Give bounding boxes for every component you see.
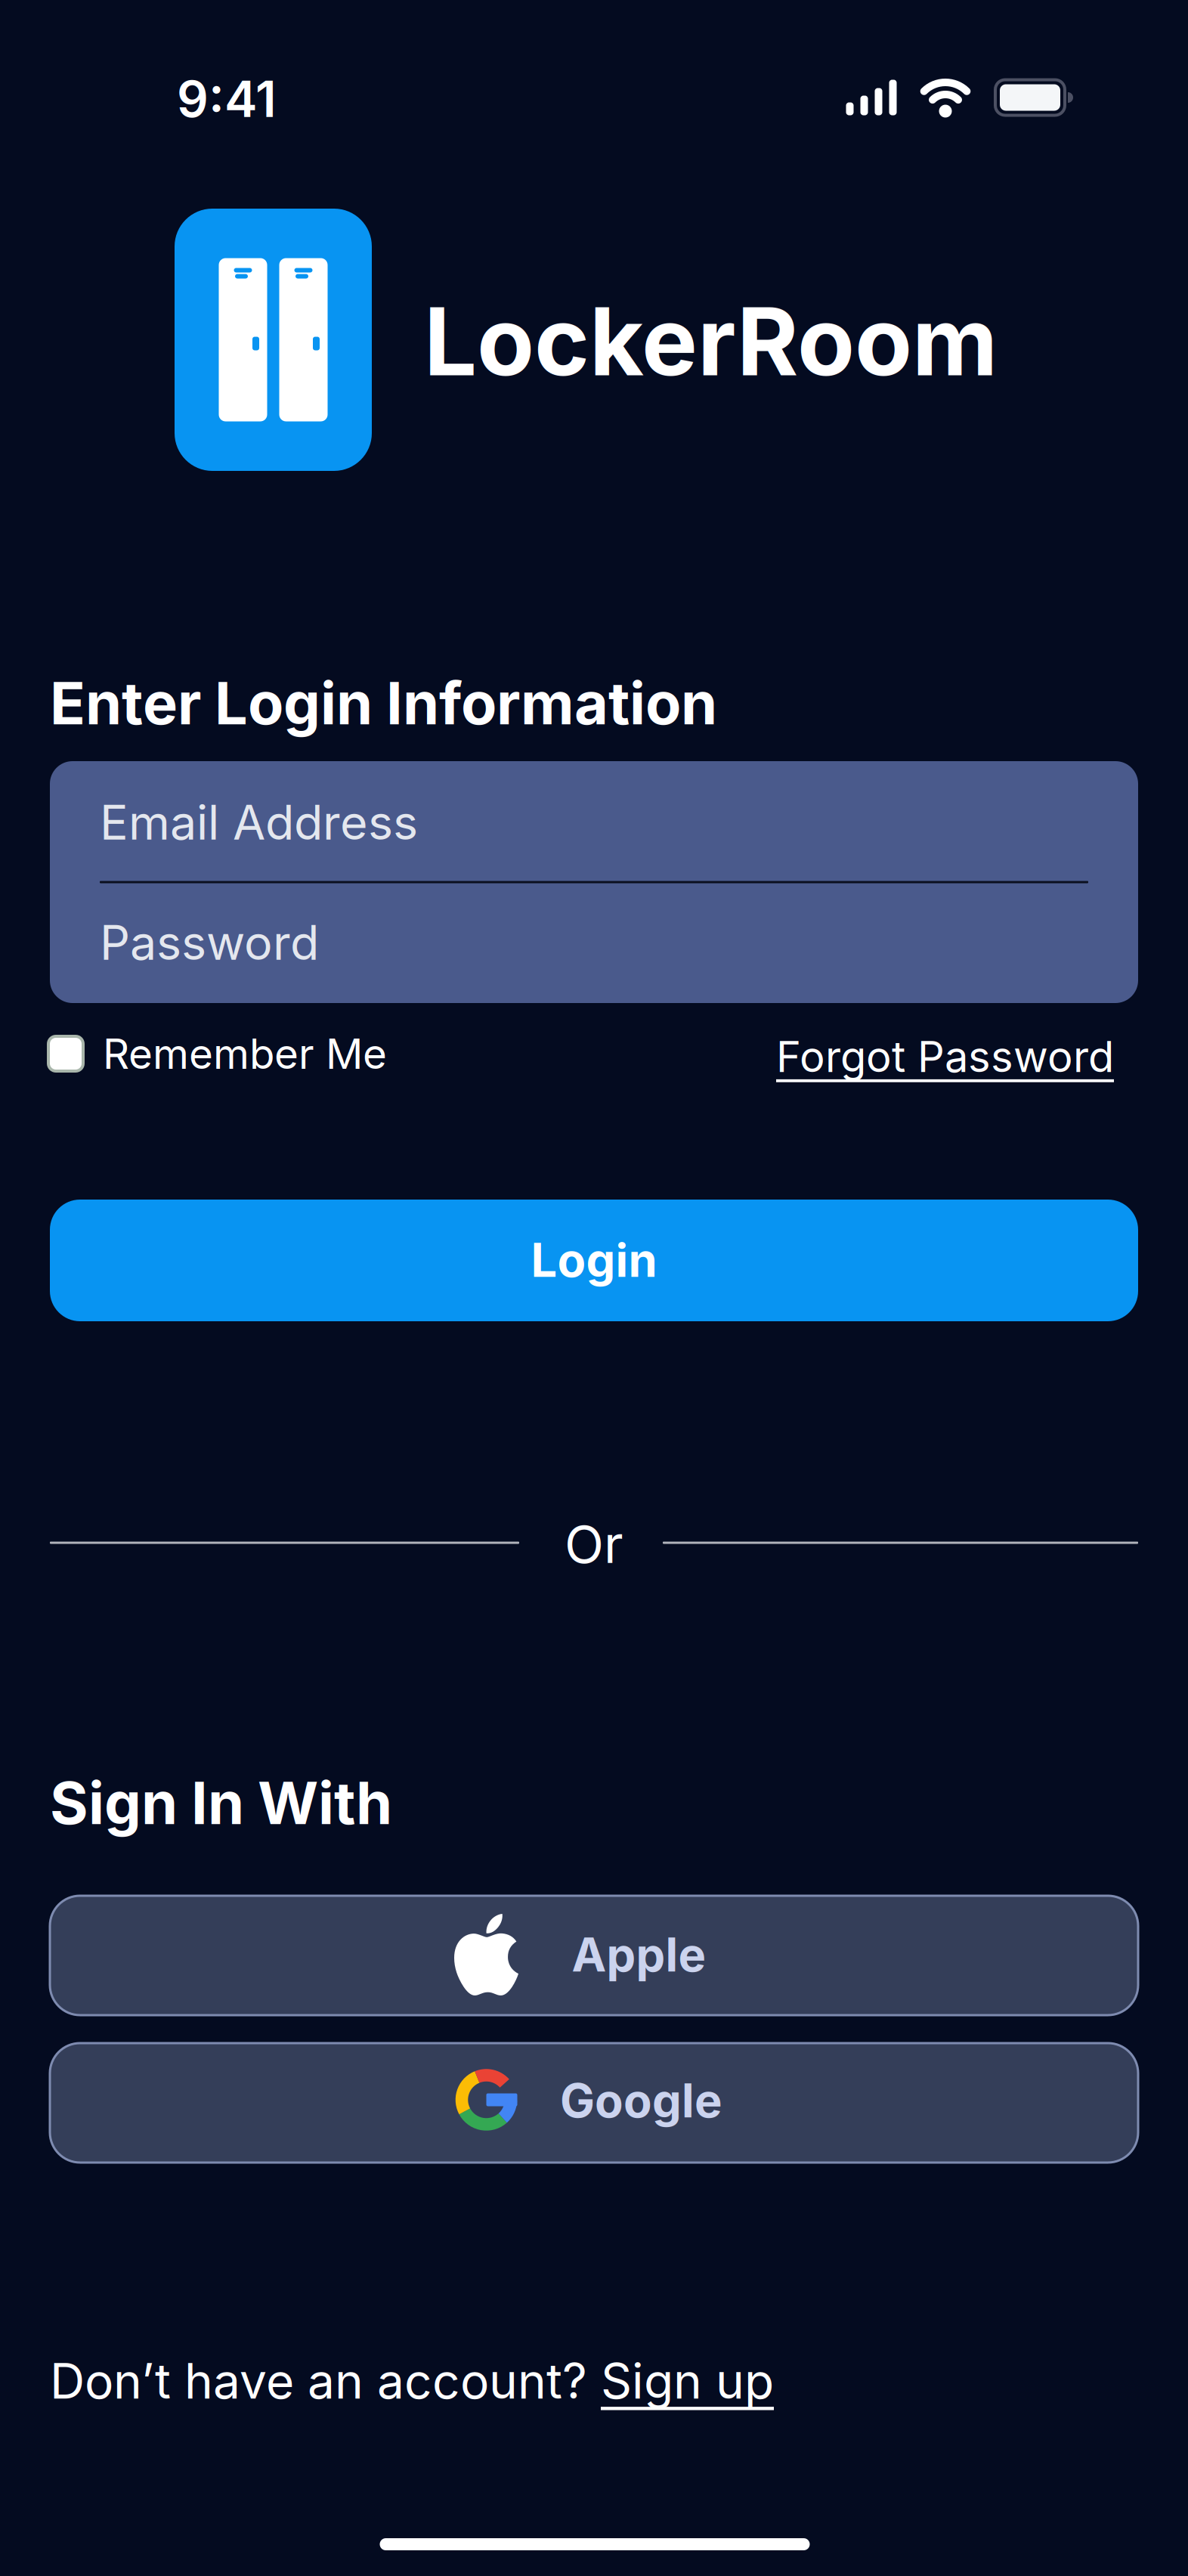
staticText: Remember Me	[103, 1029, 387, 1078]
staticText: Sign In With	[50, 1768, 392, 1837]
staticText: LockerRoom	[424, 286, 998, 397]
staticText: Or	[565, 1514, 623, 1575]
button[interactable]: Sign up	[601, 2352, 774, 2409]
staticText: Forgot Password	[776, 1032, 1114, 1082]
staticText: Google	[560, 2073, 722, 2128]
button[interactable]: Google	[50, 2043, 1138, 2163]
button[interactable]: Remember Me	[0, 0, 1188, 2576]
staticText: Sign up	[601, 2352, 774, 2409]
staticText: Apple	[572, 1927, 706, 1982]
staticText: Don’t have an account?	[50, 2352, 601, 2409]
button[interactable]: Forgot Password	[0, 0, 1188, 2576]
staticText: Password	[100, 915, 319, 970]
button[interactable]: Email Address	[0, 0, 1188, 2576]
staticText: Login	[531, 1233, 657, 1287]
staticText: Email Address	[100, 794, 418, 850]
button[interactable]: Apple	[50, 1896, 1138, 2015]
staticText: Enter Login Information	[50, 668, 717, 737]
button[interactable]: Login	[50, 1200, 1138, 1321]
staticText: 9:41	[177, 70, 277, 128]
button[interactable]: Password	[0, 0, 1188, 2576]
